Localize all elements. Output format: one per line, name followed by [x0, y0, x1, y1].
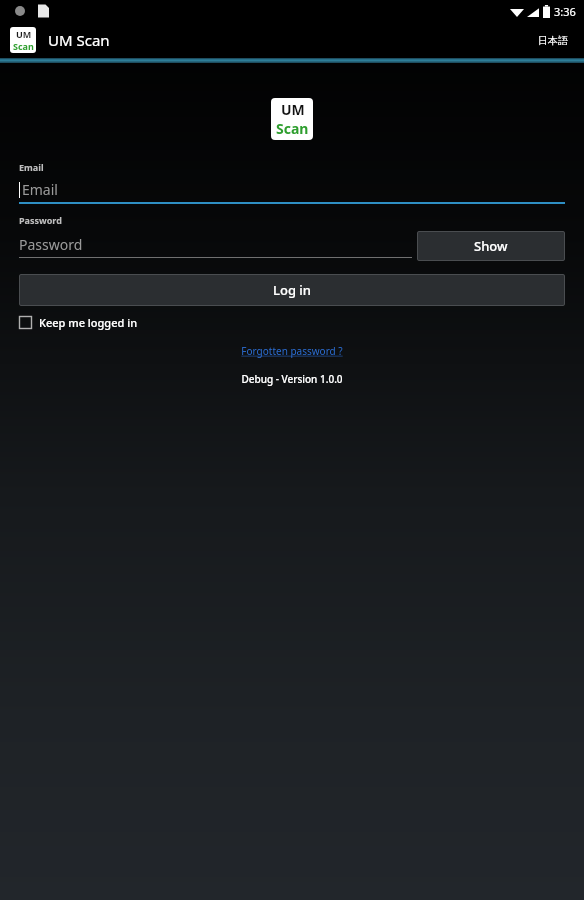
staticText: 3:36	[554, 4, 576, 19]
button[interactable]: UM Scan logo	[10, 27, 36, 53]
staticText: Forgotten password ?	[241, 344, 343, 358]
staticText: Email	[22, 180, 58, 199]
staticText: Log in	[273, 281, 311, 299]
staticText: UM Scan	[48, 30, 110, 50]
staticText: UM	[16, 28, 32, 40]
staticText: UM	[281, 100, 305, 119]
staticText: Email	[19, 161, 44, 173]
button[interactable]: Email	[19, 180, 565, 204]
button[interactable]: Password	[19, 235, 412, 258]
staticText: Scan	[13, 40, 34, 52]
staticText: Keep me logged in	[39, 315, 138, 330]
other: UM Scan logo	[271, 98, 313, 140]
staticText: Scan	[276, 119, 309, 138]
staticText: 日本語	[538, 34, 568, 47]
button[interactable]: Keep me logged in	[19, 315, 138, 330]
button[interactable]: Log in	[19, 274, 565, 306]
button[interactable]: Forgotten password ?	[235, 342, 349, 360]
button[interactable]: Show	[417, 231, 565, 261]
staticText: Show	[474, 237, 508, 255]
staticText: Password	[19, 235, 83, 254]
button[interactable]: 日本語	[532, 28, 574, 53]
staticText: Debug - Version 1.0.0	[241, 372, 343, 386]
staticText: Password	[19, 214, 62, 226]
